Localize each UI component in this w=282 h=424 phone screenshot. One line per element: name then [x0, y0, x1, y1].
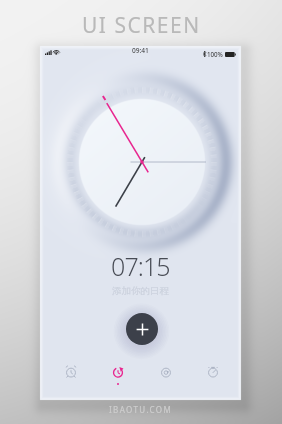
button[interactable]: Schedule	[94, 355, 141, 389]
staticText: 100%	[207, 50, 223, 58]
staticText: IBAOTU.COM	[109, 404, 173, 415]
staticText: 07:15	[111, 249, 170, 283]
staticText: 添加你的日程	[112, 285, 169, 297]
button[interactable]: Alarm	[47, 355, 94, 389]
staticText: UI SCREEN	[82, 11, 201, 40]
button[interactable]: Add schedule	[126, 313, 158, 345]
staticText: 09:41	[132, 46, 149, 55]
button[interactable]: Timer	[142, 355, 189, 389]
button[interactable]: Stopwatch	[189, 355, 236, 389]
